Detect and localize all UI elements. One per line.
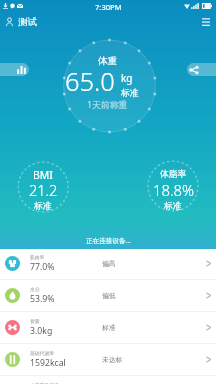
staticText: 7:30PM <box>95 2 122 12</box>
staticText: 测试 <box>18 16 37 28</box>
staticText: 未达标 <box>102 355 123 364</box>
staticText: 53.9% <box>30 293 55 305</box>
staticText: 水分 <box>30 286 40 292</box>
staticText: 内脏脂肪等级 <box>30 382 59 384</box>
staticText: 标准 <box>34 200 52 211</box>
staticText: 3.0kg <box>30 325 53 337</box>
staticText: kg <box>121 71 133 85</box>
button[interactable]: 内脏脂肪等级 <box>0 376 216 384</box>
button[interactable]: Menu <box>198 13 214 29</box>
staticText: 骨量 <box>30 318 40 324</box>
staticText: 65.0 <box>65 64 115 99</box>
button[interactable]: 肌肉率 <box>0 248 216 279</box>
staticText: 标准 <box>102 323 116 332</box>
button[interactable]: Trends chart <box>0 63 29 76</box>
staticText: 偏低 <box>102 291 116 300</box>
button[interactable]: 水分 <box>0 280 216 311</box>
staticText: 18.8% <box>153 180 194 200</box>
staticText: BMI <box>33 168 53 182</box>
button[interactable]: Share <box>187 63 216 76</box>
staticText: 1天前称重 <box>87 99 128 111</box>
button[interactable]: 骨量 <box>0 312 216 343</box>
button[interactable]: 基础代谢率 <box>0 344 216 375</box>
staticText: 77.0% <box>30 261 55 273</box>
staticText: 21.2 <box>29 180 58 200</box>
staticText: 偏高 <box>102 259 116 268</box>
staticText: 体脂率 <box>160 169 187 180</box>
staticText: 标准 <box>164 200 182 211</box>
button[interactable]: 测试 <box>5 14 38 30</box>
staticText: 标准 <box>121 87 139 98</box>
staticText: 体重 <box>98 55 117 67</box>
staticText: 1592kcal <box>30 357 66 369</box>
staticText: 基础代谢率 <box>30 350 54 356</box>
staticText: 肌肉率 <box>30 254 45 260</box>
staticText: 正在连接设备... <box>86 236 131 245</box>
